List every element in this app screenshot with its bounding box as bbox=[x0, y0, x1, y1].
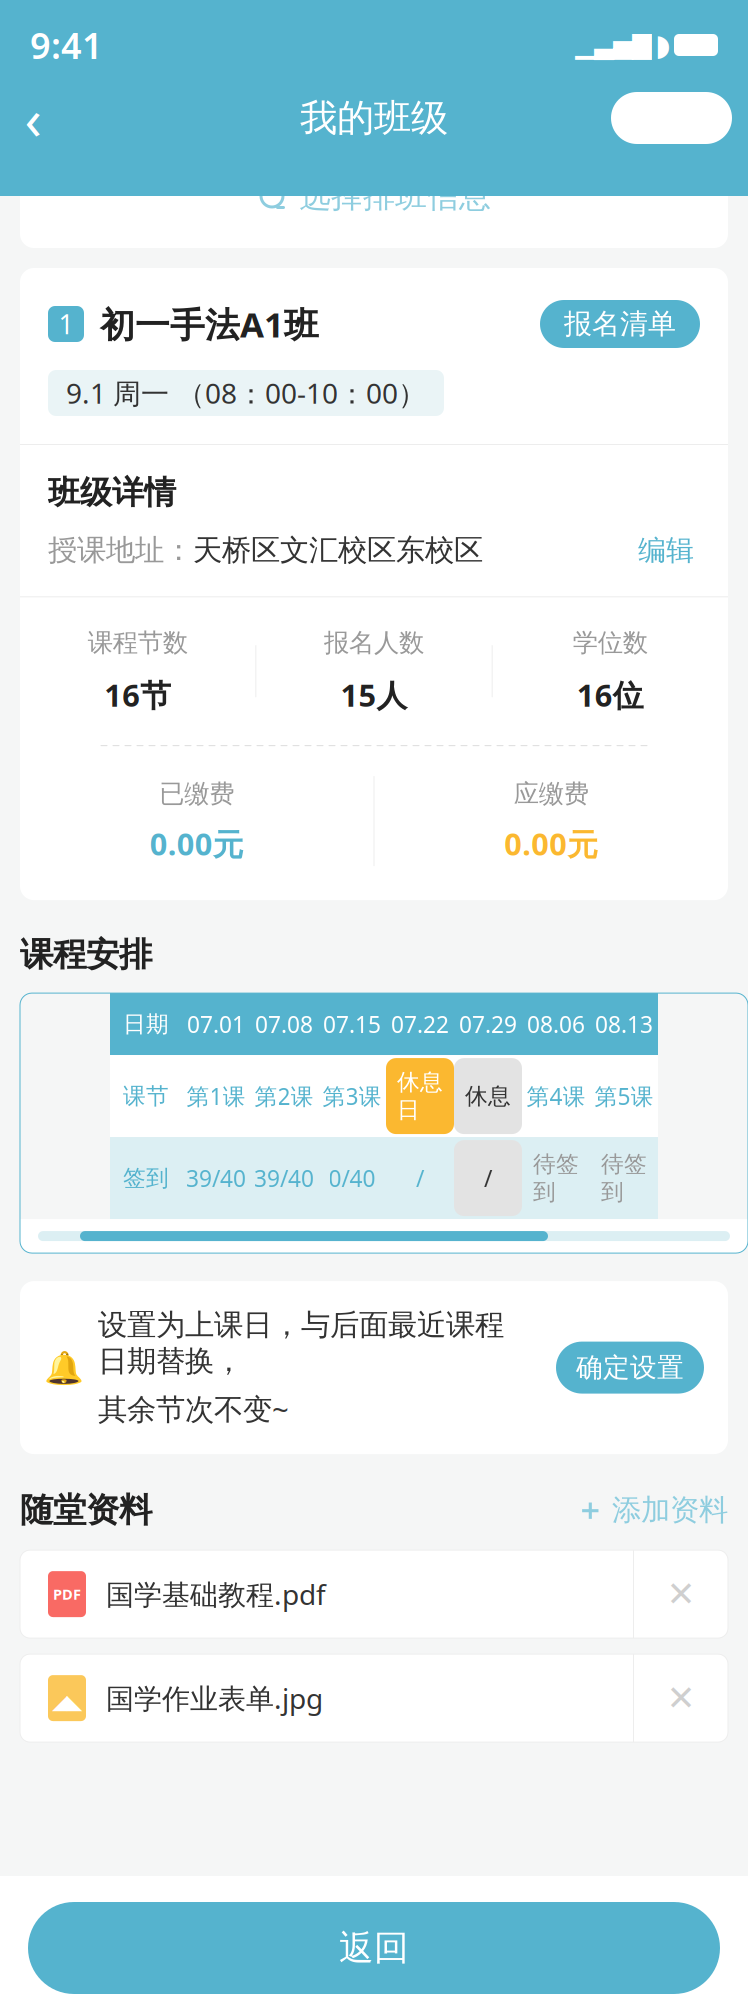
staticText: 07.22 bbox=[391, 1009, 449, 1039]
staticText: / bbox=[416, 1163, 424, 1193]
staticText: 🔔 bbox=[44, 1349, 84, 1386]
staticText: ＋ bbox=[575, 1492, 604, 1528]
button[interactable]: ◢◣ bbox=[20, 1654, 633, 1742]
staticText: 随堂资料 bbox=[20, 1490, 152, 1530]
button[interactable]: 选择排班信息 bbox=[20, 144, 728, 248]
staticText: 添加资料 bbox=[612, 1492, 728, 1528]
staticText: 授课地址： bbox=[48, 532, 193, 568]
staticText: ✕ bbox=[666, 1574, 695, 1614]
staticText: ◢◣ bbox=[52, 1690, 82, 1713]
staticText: 报名人数 bbox=[324, 627, 424, 658]
staticText: 07.08 bbox=[255, 1009, 313, 1039]
button[interactable]: Close bbox=[672, 92, 732, 144]
button[interactable]: 报名清单 bbox=[540, 300, 700, 348]
staticText: 编辑 bbox=[638, 533, 694, 567]
button[interactable]: Back bbox=[0, 85, 66, 151]
staticText: 9:41 bbox=[30, 21, 103, 69]
staticText: 课程节数 bbox=[88, 627, 188, 658]
staticText: 天桥区文汇校区东校区 bbox=[193, 532, 483, 568]
staticText: 选择排班信息 bbox=[299, 176, 491, 216]
staticText: 其余节次不变~ bbox=[98, 1389, 289, 1428]
staticText: 我的班级 bbox=[300, 95, 448, 141]
staticText: 0.00元 bbox=[150, 823, 244, 864]
staticText: 课节 bbox=[123, 1082, 169, 1110]
staticText: 待签到 bbox=[533, 1150, 579, 1206]
staticText: 国学基础教程.pdf bbox=[106, 1575, 326, 1613]
staticText: ▁▃▅▇ bbox=[575, 31, 651, 59]
staticText: 返回 bbox=[339, 1927, 409, 1969]
staticText: 已缴费 bbox=[159, 778, 234, 809]
staticText: ◗ bbox=[655, 28, 670, 62]
staticText: 16节 bbox=[104, 674, 171, 715]
staticText: 07.01 bbox=[187, 1009, 245, 1039]
staticText: 9.1 周一 （08：00-10：00） bbox=[66, 374, 426, 412]
staticText: 日期 bbox=[123, 1010, 169, 1038]
staticText: 15人 bbox=[340, 674, 407, 715]
staticText: ‹ bbox=[24, 81, 41, 155]
staticText: 设置为上课日，与后面最近课程日期替换， bbox=[98, 1307, 504, 1379]
staticText: 第3课 bbox=[322, 1081, 381, 1111]
staticText: 第2课 bbox=[254, 1081, 313, 1111]
staticText: 1 bbox=[58, 306, 73, 342]
staticText: 第4课 bbox=[526, 1081, 585, 1111]
staticText: ✕ bbox=[666, 1678, 695, 1718]
staticText: 07.15 bbox=[323, 1009, 381, 1039]
staticText: 国学作业表单.jpg bbox=[106, 1679, 323, 1717]
button[interactable]: 编辑 bbox=[632, 530, 700, 570]
staticText: PDF bbox=[53, 1584, 81, 1604]
staticText: 0/40 bbox=[328, 1163, 375, 1193]
button[interactable]: Remove 国学作业表单.jpg bbox=[634, 1654, 728, 1742]
button[interactable]: Remove 国学基础教程.pdf bbox=[634, 1550, 728, 1638]
staticText: 07.29 bbox=[459, 1009, 517, 1039]
staticText: 学位数 bbox=[573, 627, 648, 658]
staticText: / bbox=[484, 1163, 492, 1193]
staticText: 08.06 bbox=[527, 1009, 585, 1039]
staticText: 休息 bbox=[465, 1082, 511, 1110]
staticText: 初一手法A1班 bbox=[100, 301, 319, 347]
staticText: 0.00元 bbox=[504, 823, 598, 864]
staticText: 班级详情 bbox=[48, 473, 176, 512]
button[interactable]: More bbox=[611, 92, 671, 144]
staticText: 39/40 bbox=[254, 1163, 314, 1193]
staticText: 确定设置 bbox=[576, 1351, 684, 1384]
staticText: 16位 bbox=[577, 674, 644, 715]
staticText: 08.13 bbox=[595, 1009, 653, 1039]
staticText: 报名清单 bbox=[564, 307, 676, 341]
button[interactable]: ＋ bbox=[575, 1488, 728, 1532]
staticText: 39/40 bbox=[186, 1163, 246, 1193]
staticText: 待签到 bbox=[601, 1150, 647, 1206]
staticText: 休息日 bbox=[397, 1068, 443, 1124]
button[interactable]: PDF bbox=[20, 1550, 633, 1638]
staticText: 第1课 bbox=[186, 1081, 245, 1111]
button[interactable]: 确定设置 bbox=[556, 1342, 704, 1394]
button[interactable]: 返回 bbox=[28, 1902, 720, 1994]
staticText: 签到 bbox=[123, 1164, 169, 1192]
staticText: 课程安排 bbox=[20, 934, 152, 975]
staticText: 应缴费 bbox=[514, 778, 589, 809]
staticText: 第5课 bbox=[594, 1081, 653, 1111]
